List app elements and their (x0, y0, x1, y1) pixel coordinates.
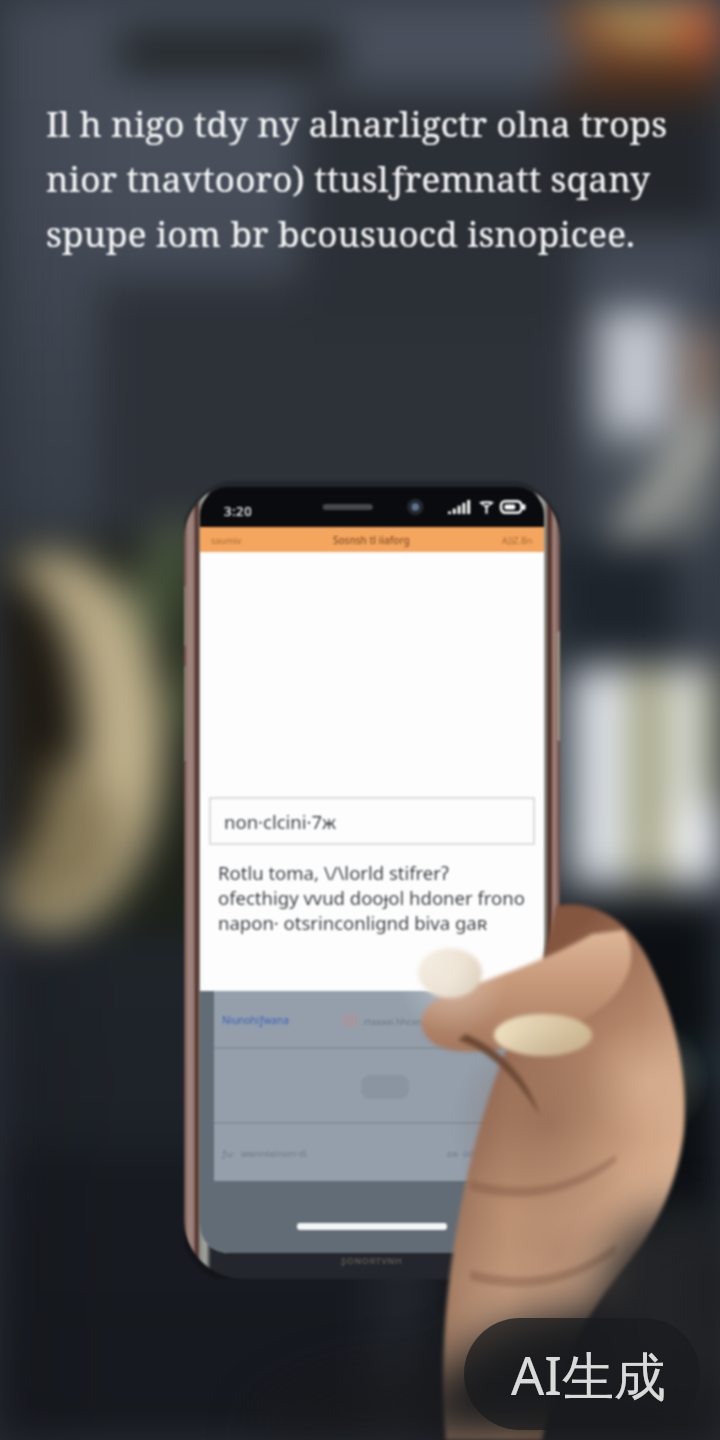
staticText: napon· otsrinconlignd biva gaʀ (218, 910, 488, 935)
staticText: iiddshrıınjnunıı (463, 1147, 527, 1159)
button[interactable]: non·clcini·7ж (210, 798, 534, 844)
staticText: 3:20 (224, 502, 253, 520)
button[interactable]: saumiv (200, 527, 544, 552)
staticText: ʂᴏɴᴏʀᴛᴠɴʜ (341, 1252, 403, 1267)
button[interactable]: AI generated watermark (464, 1318, 700, 1430)
staticText: ƒω· (222, 1147, 236, 1159)
staticText: Rotlu toma, \/\lorld stifrerʔ (218, 860, 449, 885)
staticText: AJ)Z.Bn (502, 534, 533, 546)
staticText: wwnnteinom·di (241, 1147, 307, 1159)
button[interactable]: Niunohiƒwana (214, 991, 535, 1049)
staticText: Sosnsh tl iiaforg (333, 533, 410, 547)
staticText: Niunohiƒwana (222, 1013, 289, 1027)
staticText: spupe iom br bcousuocd isnopicee. (46, 210, 636, 258)
staticText: nior tnavtooro) ttuslƒremnatt sqany (46, 155, 651, 203)
staticText: Il h nigo tdy ny alnarligctr olna trops (46, 100, 668, 148)
staticText: AI生成 (511, 1339, 666, 1410)
staticText: ofecthigy vvud dooɟol hdoner frono (218, 885, 525, 910)
staticText: rtaaaai.hhcanan.hli (364, 1015, 446, 1027)
button[interactable] (214, 1049, 535, 1124)
staticText: ɢɴ (447, 1147, 458, 1159)
button[interactable]: ƒω· (214, 1124, 535, 1181)
staticText: non·clcini·7ж (224, 809, 337, 834)
staticText: saumiv (211, 534, 242, 546)
